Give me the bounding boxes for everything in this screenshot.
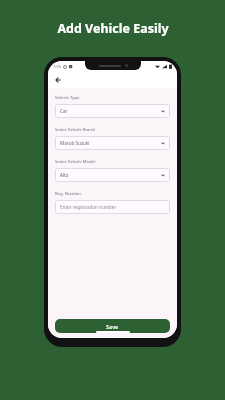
staticText: Car	[60, 108, 68, 114]
staticText: Vehicle Type	[55, 95, 80, 101]
staticText: Alto	[60, 172, 69, 178]
staticText: Save	[106, 323, 119, 330]
staticText: Select Vehicle Brand	[55, 127, 95, 133]
button[interactable]: Alto	[55, 168, 170, 182]
staticText: Reg. Number	[55, 191, 82, 197]
staticText: 7:35	[53, 64, 61, 69]
button[interactable]: Save	[55, 319, 170, 333]
staticText: Select Vehicle Model	[55, 159, 96, 165]
staticText: Enter registration number	[60, 204, 117, 210]
button[interactable]: Back	[52, 74, 64, 86]
button[interactable]: Car	[55, 104, 170, 118]
staticText: Add Vehicle Easily	[57, 20, 169, 37]
button[interactable]: Maruti Suzuki	[55, 136, 170, 150]
button[interactable]: Enter registration number	[55, 200, 170, 214]
staticText: Maruti Suzuki	[60, 140, 90, 146]
